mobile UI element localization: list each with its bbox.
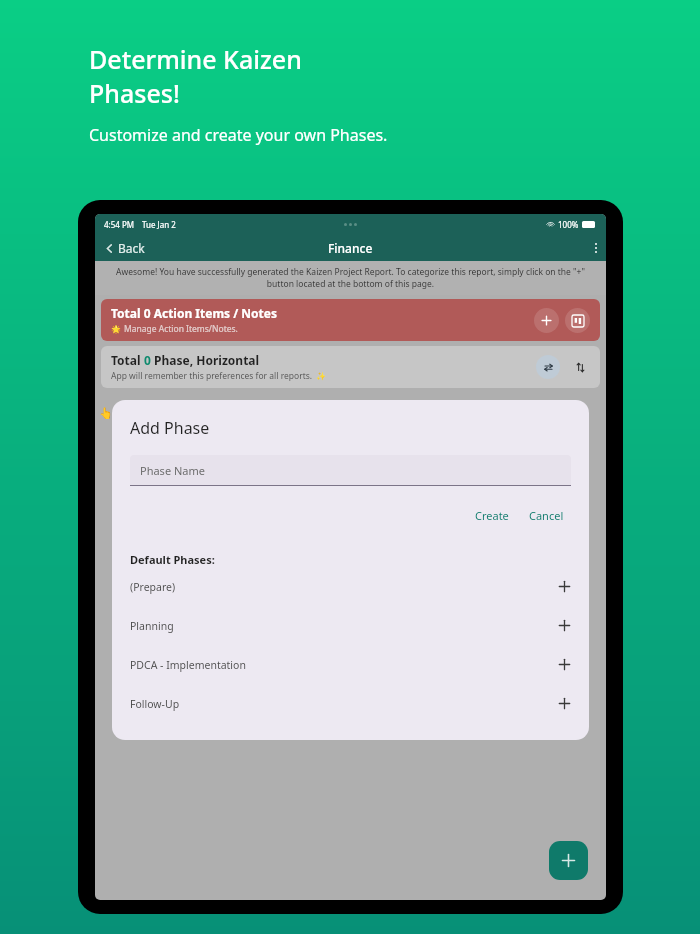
staticText: 4:54 PM: [104, 219, 135, 230]
staticText: Back: [118, 240, 145, 256]
staticText: PDCA - Implementation: [130, 658, 558, 672]
staticText: Phase, Horizontal: [151, 352, 260, 368]
button[interactable]: Create: [470, 505, 514, 526]
staticText: Determine Kaizen: [89, 42, 302, 76]
staticText: Default Phases:: [130, 552, 215, 567]
staticText: 🌟: [111, 325, 121, 334]
staticText: Total 0 Action Items / Notes: [111, 305, 278, 321]
button[interactable]: Toggle orientation: [536, 355, 560, 379]
button[interactable]: PDCA - Implementation: [112, 645, 589, 684]
staticText: Phase Name: [140, 463, 205, 478]
button[interactable]: Total 0 Action Items / Notes: [101, 299, 600, 341]
staticText: Customize and create your own Phases.: [89, 124, 388, 146]
button[interactable]: Cancel: [524, 505, 569, 526]
button[interactable]: More options: [590, 238, 602, 258]
staticText: App will remember this preferences for a…: [111, 370, 313, 382]
staticText: (Prepare): [130, 580, 558, 594]
button[interactable]: Back: [101, 237, 148, 259]
staticText: Add Phase: [130, 417, 210, 439]
staticText: Finance: [328, 240, 373, 256]
staticText: Tue Jan 2: [142, 219, 176, 230]
staticText: Create: [475, 508, 509, 523]
staticText: Planning: [130, 619, 558, 633]
button[interactable]: Add action item: [534, 308, 559, 333]
button[interactable]: Planning: [112, 606, 589, 645]
staticText: 100%: [558, 219, 579, 230]
button[interactable]: Phase Name: [130, 455, 571, 485]
staticText: Manage Action Items/Notes.: [124, 323, 238, 335]
button[interactable]: (Prepare): [112, 567, 589, 606]
staticText: Cancel: [529, 508, 564, 523]
staticText: 👆: [99, 407, 113, 420]
button[interactable]: Total: [101, 346, 600, 388]
staticText: Total: [111, 352, 144, 368]
button[interactable]: Follow-Up: [112, 684, 589, 723]
button[interactable]: Sort: [570, 357, 590, 377]
staticText: Phases!: [89, 76, 180, 110]
staticText: Follow-Up: [130, 697, 558, 711]
staticText: Awesome! You have successfully generated…: [105, 266, 596, 290]
staticText: 0: [144, 352, 151, 368]
staticText: ✨: [316, 372, 326, 381]
button[interactable]: Add: [549, 841, 588, 880]
button[interactable]: Board view: [565, 308, 590, 333]
